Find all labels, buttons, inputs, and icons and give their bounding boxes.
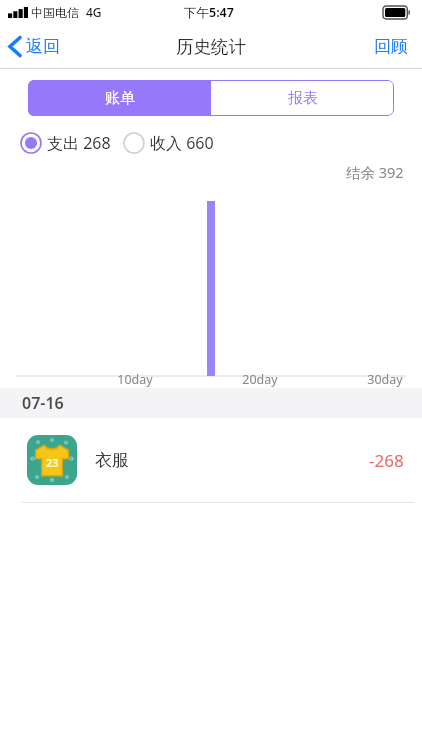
button[interactable]: 衣服 xyxy=(0,418,422,502)
staticText: 衣服 xyxy=(95,450,129,471)
staticText: 回顾 xyxy=(374,36,408,57)
staticText: 中国电信 xyxy=(31,5,79,20)
button[interactable]: 收入 660 xyxy=(123,132,214,154)
staticText: 20day xyxy=(231,371,289,388)
staticText: 收入 660 xyxy=(150,132,214,154)
staticText: 30day xyxy=(356,371,414,388)
staticText: 报表 xyxy=(288,89,318,108)
staticText: 历史统计 xyxy=(176,36,246,58)
button[interactable]: 报表 xyxy=(211,80,394,116)
staticText: 结余 392 xyxy=(346,162,404,182)
button[interactable]: 账单 xyxy=(28,80,211,116)
staticText: 10day xyxy=(106,371,164,388)
staticText: 23 xyxy=(46,455,59,470)
button[interactable]: 返回 xyxy=(0,30,74,63)
staticText: 4G xyxy=(86,4,102,20)
staticText: 下午5:47 xyxy=(184,4,234,21)
button[interactable]: 支出 268 xyxy=(20,132,111,154)
staticText: 返回 xyxy=(26,36,60,57)
other: 衣服 xyxy=(27,435,77,485)
staticText: 支出 268 xyxy=(47,132,111,154)
staticText: 账单 xyxy=(105,89,135,108)
button[interactable]: 回顾 xyxy=(360,28,422,65)
staticText: -268 xyxy=(369,449,404,472)
staticText: 07-16 xyxy=(22,392,64,414)
